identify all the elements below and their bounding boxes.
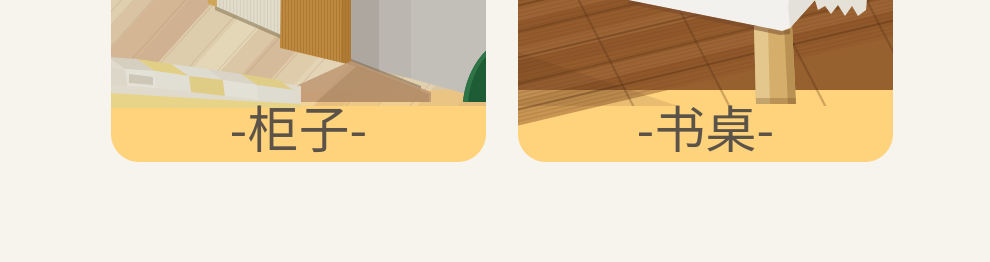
staticText: -柜子- — [229, 89, 367, 163]
button[interactable]: -柜子- — [111, 0, 486, 162]
button[interactable]: -书桌- — [518, 0, 893, 162]
staticText: -书桌- — [636, 89, 774, 163]
